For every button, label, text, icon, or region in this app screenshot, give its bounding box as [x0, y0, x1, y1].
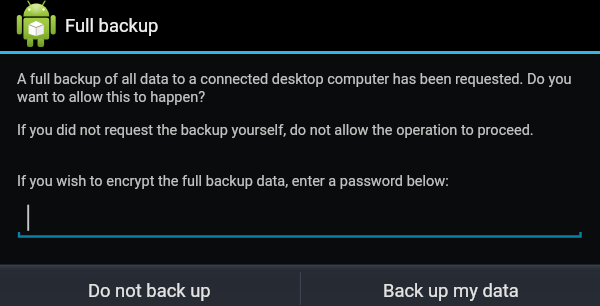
staticText: If you did not request the backup yourse…: [17, 122, 534, 139]
button[interactable]: Do not back up: [0, 264, 299, 306]
staticText: Full backup: [65, 15, 159, 37]
staticText: A full backup of all data to a connected…: [17, 71, 589, 105]
staticText: Back up my data: [383, 280, 519, 302]
staticText: Do not back up: [88, 280, 211, 302]
staticText: If you wish to encrypt the full backup d…: [17, 173, 449, 190]
button[interactable]: Password: [17, 202, 583, 238]
button[interactable]: Back up my data: [301, 264, 600, 306]
